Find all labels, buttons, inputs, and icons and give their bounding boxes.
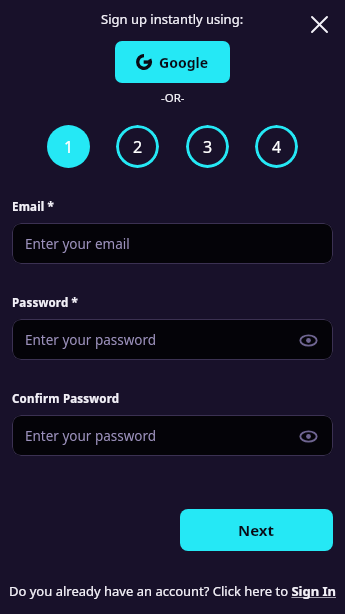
button[interactable]: Show password [296,424,320,448]
button[interactable]: 4 [255,125,298,168]
staticText: Confirm Password [12,391,120,407]
button[interactable]: Close [304,10,334,38]
staticText: Enter your password [25,331,157,349]
staticText: Google [159,53,209,72]
staticText: Password * [12,295,79,311]
button[interactable]: Do you already have an account? Click he… [9,582,337,600]
button[interactable]: 1 [47,125,90,168]
staticText: 3 [203,136,213,158]
staticText: -OR- [161,90,185,106]
staticText: Enter your password [25,427,157,445]
button[interactable]: Next [180,509,333,551]
staticText: 2 [133,136,143,158]
button[interactable]: Enter your email [12,223,333,264]
button[interactable]: 3 [186,125,229,168]
staticText: Email * [12,199,55,215]
button[interactable]: Enter your password [12,319,333,360]
staticText: Next [238,520,275,540]
button[interactable]: 2 [116,125,159,168]
staticText: 1 [64,136,74,158]
staticText: 4 [272,136,282,158]
staticText: Sign up instantly using: [101,10,244,28]
staticText: Enter your email [25,235,130,253]
button[interactable]: Enter your password [12,415,333,456]
button[interactable]: Show password [296,328,320,352]
button[interactable]: Google [115,41,230,83]
